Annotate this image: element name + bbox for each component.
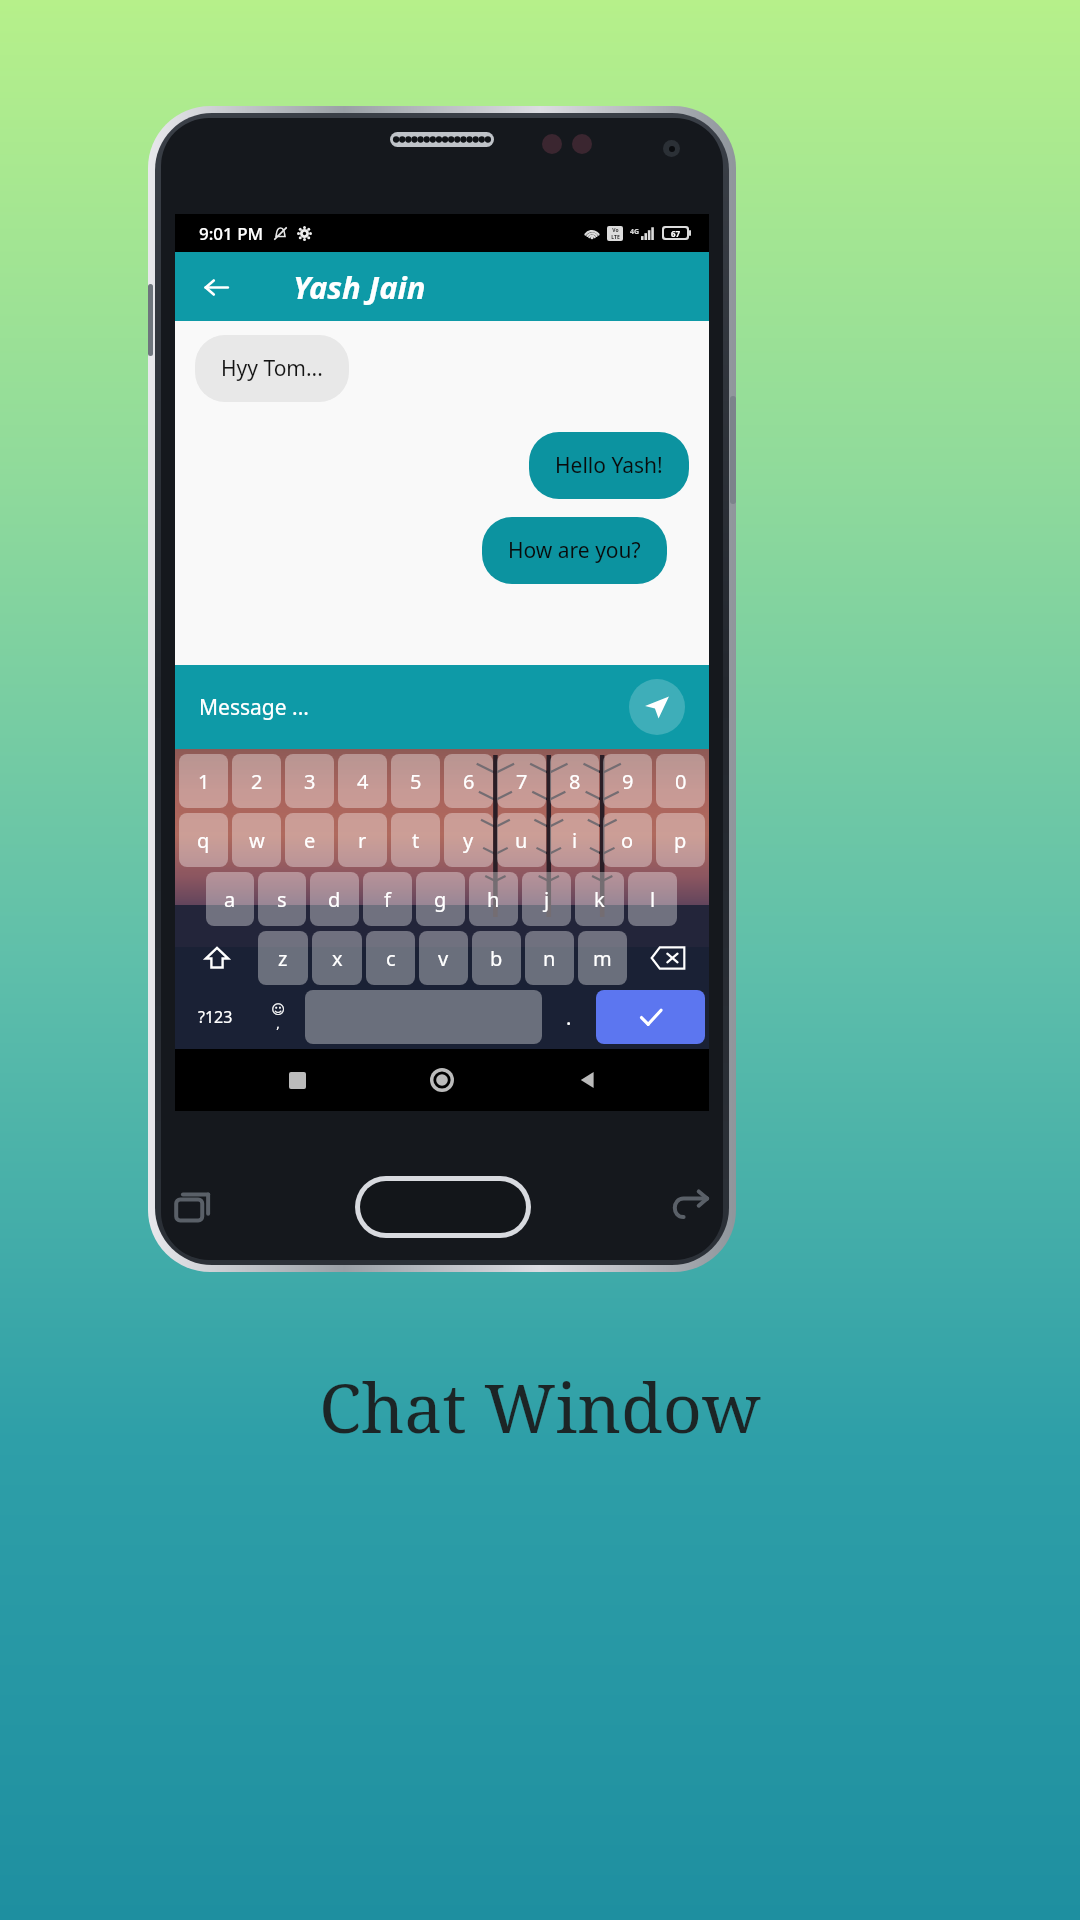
button[interactable]: 0 xyxy=(656,754,705,808)
staticText: g xyxy=(434,886,447,913)
button[interactable]: x xyxy=(312,931,362,985)
button[interactable]: Home xyxy=(418,1056,466,1104)
staticText: Vo LTE xyxy=(611,227,620,240)
button[interactable]: q xyxy=(179,813,228,867)
button[interactable]: j xyxy=(522,872,571,926)
button[interactable]: ☺ , xyxy=(255,990,301,1044)
button[interactable]: o xyxy=(603,813,652,867)
staticText: u xyxy=(515,827,528,854)
button[interactable]: Send xyxy=(629,679,685,735)
staticText: 4G xyxy=(630,227,640,237)
staticText: l xyxy=(650,886,656,913)
button[interactable]: 5 xyxy=(391,754,440,808)
staticText: 3 xyxy=(304,768,316,795)
button[interactable]: p xyxy=(656,813,705,867)
button[interactable]: Enter xyxy=(596,990,705,1044)
button[interactable]: Back xyxy=(193,264,239,310)
button[interactable]: . xyxy=(546,990,592,1044)
staticText: q xyxy=(197,827,210,854)
button[interactable]: Recents xyxy=(273,1056,321,1104)
button[interactable]: Back xyxy=(564,1056,612,1104)
staticText: x xyxy=(332,945,343,972)
staticText: 5 xyxy=(410,768,422,795)
staticText: ?123 xyxy=(198,1006,233,1028)
button[interactable]: u xyxy=(497,813,546,867)
button[interactable]: r xyxy=(338,813,387,867)
staticText: v xyxy=(438,945,449,972)
button[interactable]: w xyxy=(232,813,281,867)
staticText: r xyxy=(358,827,367,854)
button[interactable]: 9 xyxy=(603,754,652,808)
button[interactable]: c xyxy=(366,931,415,985)
staticText: n xyxy=(543,945,556,972)
staticText: 67 xyxy=(671,228,681,238)
staticText: Hyy Tom... xyxy=(221,354,323,383)
button[interactable]: 4 xyxy=(338,754,387,808)
staticText: f xyxy=(384,886,391,913)
staticText: 9:01 PM xyxy=(199,222,264,245)
button[interactable]: n xyxy=(525,931,574,985)
button[interactable]: z xyxy=(258,931,308,985)
staticText: z xyxy=(278,945,288,972)
button[interactable]: How are you? xyxy=(482,517,667,584)
staticText: . xyxy=(566,1004,572,1031)
staticText: h xyxy=(487,886,500,913)
button[interactable]: 8 xyxy=(550,754,599,808)
staticText: 7 xyxy=(516,768,528,795)
button[interactable]: a xyxy=(206,872,254,926)
button[interactable]: b xyxy=(472,931,521,985)
button[interactable]: Backspace xyxy=(631,931,705,985)
button[interactable]: e xyxy=(285,813,334,867)
button[interactable]: Shift xyxy=(179,931,254,985)
staticText: ☺ , xyxy=(271,1002,285,1032)
button[interactable]: Hyy Tom... xyxy=(195,335,349,402)
staticText: 0 xyxy=(675,768,687,795)
staticText: a xyxy=(224,886,236,913)
staticText: Hello Yash! xyxy=(555,451,663,480)
staticText: k xyxy=(594,886,605,913)
button[interactable]: v xyxy=(419,931,468,985)
staticText: 2 xyxy=(251,768,263,795)
staticText: d xyxy=(328,886,341,913)
staticText: 8 xyxy=(569,768,581,795)
button[interactable]: l xyxy=(628,872,677,926)
button[interactable] xyxy=(305,990,542,1044)
staticText: i xyxy=(572,827,578,854)
staticText: 6 xyxy=(463,768,475,795)
staticText: How are you? xyxy=(508,536,641,565)
button[interactable]: 7 xyxy=(497,754,546,808)
button[interactable]: 3 xyxy=(285,754,334,808)
staticText: j xyxy=(544,886,550,913)
button[interactable]: 6 xyxy=(444,754,493,808)
staticText: o xyxy=(621,827,634,854)
staticText: Chat Window xyxy=(319,1360,761,1453)
button[interactable]: 1 xyxy=(179,754,228,808)
button[interactable]: h xyxy=(469,872,518,926)
button[interactable]: 2 xyxy=(232,754,281,808)
staticText: Message ... xyxy=(199,693,309,722)
button[interactable]: t xyxy=(391,813,440,867)
button[interactable]: Hello Yash! xyxy=(529,432,689,499)
button[interactable]: d xyxy=(310,872,359,926)
staticText: 1 xyxy=(198,768,210,795)
staticText: w xyxy=(249,827,265,854)
button[interactable]: ?123 xyxy=(179,990,251,1044)
staticText: b xyxy=(490,945,503,972)
staticText: 4 xyxy=(357,768,369,795)
button[interactable]: y xyxy=(444,813,493,867)
button[interactable]: g xyxy=(416,872,465,926)
staticText: m xyxy=(593,945,612,972)
button[interactable]: s xyxy=(258,872,306,926)
staticText: e xyxy=(304,827,316,854)
staticText: t xyxy=(412,827,420,854)
button[interactable]: f xyxy=(363,872,412,926)
staticText: c xyxy=(386,945,396,972)
staticText: y xyxy=(463,827,474,854)
button[interactable]: i xyxy=(550,813,599,867)
staticText: p xyxy=(674,827,687,854)
button[interactable]: k xyxy=(575,872,624,926)
staticText: 9 xyxy=(622,768,634,795)
staticText: s xyxy=(277,886,287,913)
button[interactable]: m xyxy=(578,931,627,985)
button[interactable]: Message ... xyxy=(199,693,629,722)
